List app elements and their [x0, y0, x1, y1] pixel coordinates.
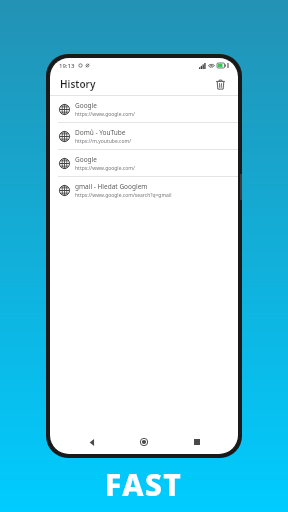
button[interactable]: Google [50, 150, 238, 176]
staticText: https://www.google.com/search?q=gmail [75, 192, 172, 199]
button[interactable]: Google [50, 96, 238, 122]
button[interactable]: Back [81, 431, 103, 453]
staticText: 19:13 [59, 62, 75, 70]
staticText: Domů - YouTube [75, 128, 126, 137]
staticText: Google [75, 101, 97, 110]
button[interactable]: Home [133, 431, 155, 453]
button[interactable]: Clear history [211, 75, 229, 93]
button[interactable]: gmail - Hledat Googlem [50, 177, 238, 203]
staticText: FAST [105, 464, 183, 505]
button[interactable]: Recents [186, 431, 208, 453]
staticText: https://m.youtube.com/ [75, 138, 132, 145]
staticText: Google [75, 155, 97, 164]
staticText: https://www.google.com/ [75, 111, 135, 118]
staticText: History [60, 77, 96, 91]
staticText: gmail - Hledat Googlem [75, 182, 148, 191]
button[interactable]: Domů - YouTube [50, 123, 238, 149]
staticText: https://www.google.com/ [75, 165, 135, 172]
